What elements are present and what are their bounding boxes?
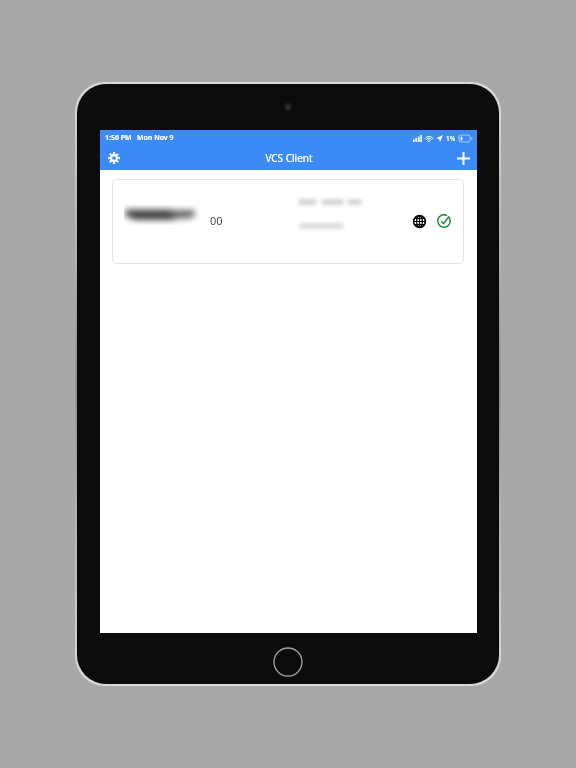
staticText: 1% [446,134,456,143]
staticText: 1:56 PM Mon Nov 9 [105,133,174,143]
button[interactable]: Add [453,148,473,168]
button[interactable]: Settings [104,148,124,168]
staticText: 00 [210,213,223,228]
other: Home [273,647,303,677]
button[interactable]: Open website [408,210,430,232]
button[interactable]: Connected [432,209,456,233]
button[interactable]: 00 [112,179,464,264]
staticText: VCS Client [265,151,313,165]
